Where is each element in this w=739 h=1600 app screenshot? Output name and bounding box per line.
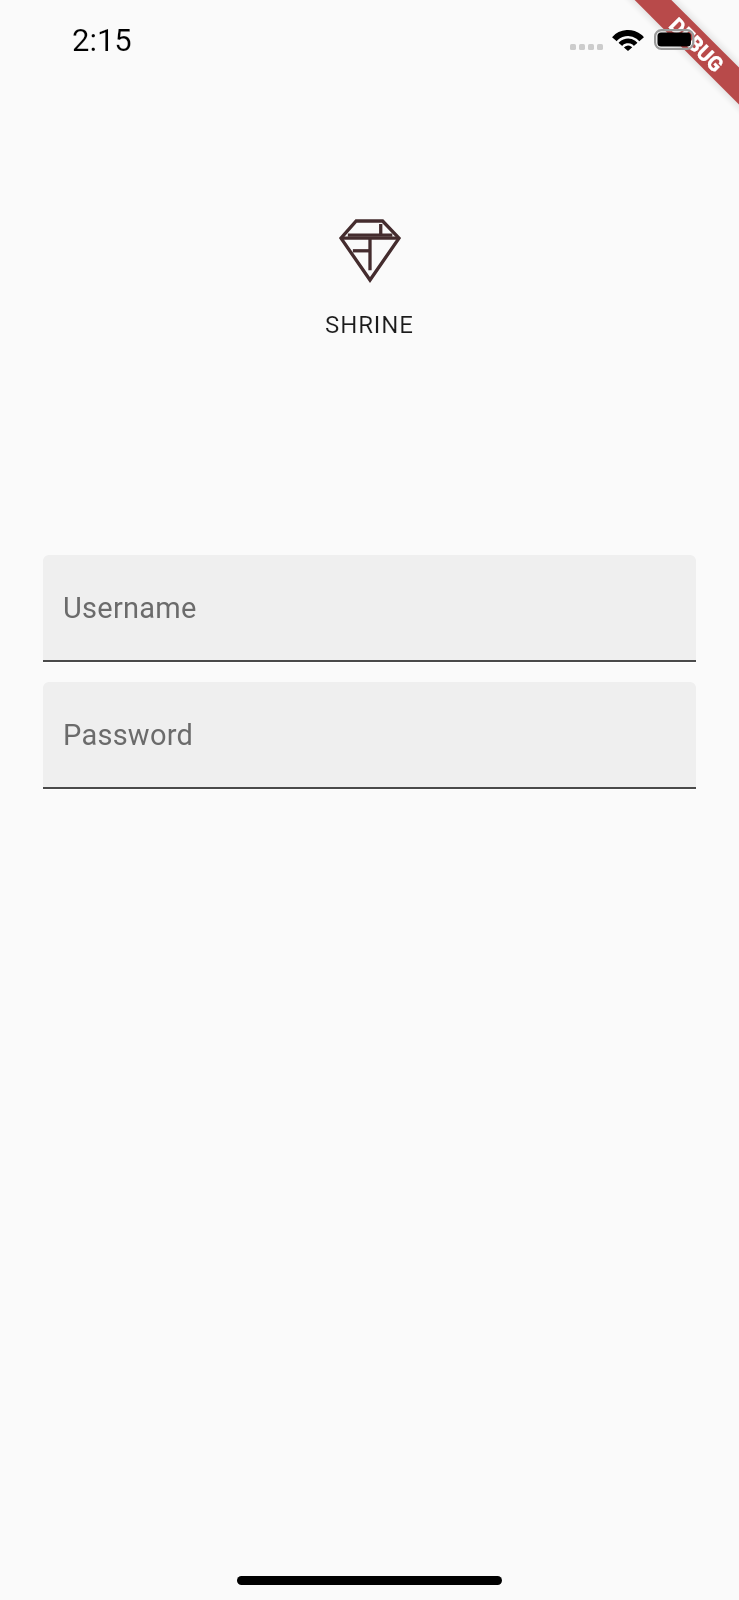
staticText: SHRINE [325,311,414,339]
staticText: 2:15 [72,22,132,58]
staticText: Username [63,591,197,625]
staticText: DEBUG [665,13,729,76]
button[interactable]: Username [43,555,696,662]
button[interactable]: Password [43,682,696,789]
staticText: Password [63,718,194,752]
